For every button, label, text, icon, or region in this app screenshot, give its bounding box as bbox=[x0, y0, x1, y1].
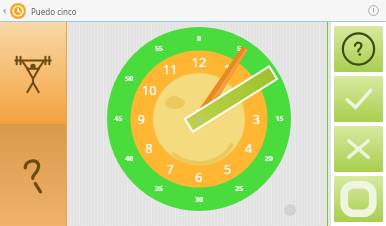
button[interactable]: Back bbox=[0, 0, 10, 21]
button[interactable]: Exercise bbox=[0, 22, 66, 124]
button[interactable]: Correct bbox=[334, 76, 383, 122]
button[interactable]: Repeat bbox=[334, 176, 383, 222]
button[interactable]: Info bbox=[360, 0, 386, 21]
button[interactable]: Help bbox=[334, 26, 383, 72]
button[interactable]: Wrong bbox=[334, 126, 383, 172]
button[interactable]: Help bbox=[0, 124, 66, 226]
